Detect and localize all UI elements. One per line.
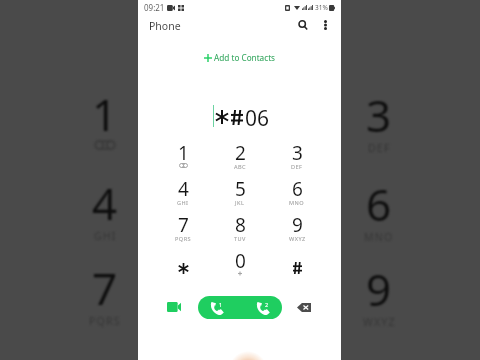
staticText: 9: [366, 259, 392, 319]
button[interactable]: 3: [271, 140, 323, 176]
staticText: 6: [292, 176, 303, 202]
staticText: ABC: [234, 163, 247, 171]
button[interactable]: 6: [271, 176, 323, 212]
staticText: DEF: [291, 163, 303, 171]
button[interactable]: 4: [157, 176, 209, 212]
staticText: 1: [219, 301, 223, 308]
staticText: 7: [92, 258, 118, 318]
button[interactable]: 2: [214, 140, 266, 176]
staticText: Phone: [149, 19, 181, 33]
button[interactable]: Search: [293, 15, 313, 35]
staticText: 1: [178, 140, 189, 166]
button[interactable]: [271, 248, 323, 284]
staticText: 31%: [315, 3, 328, 12]
staticText: JKL: [235, 199, 245, 207]
button[interactable]: [157, 248, 209, 284]
staticText: GHI: [177, 199, 189, 207]
button[interactable]: Backspace: [292, 296, 316, 318]
staticText: 3: [366, 85, 392, 145]
staticText: Add to Contacts: [214, 52, 276, 63]
button[interactable]: 5: [214, 176, 266, 212]
staticText: WXYZ: [289, 235, 306, 243]
button[interactable]: 8: [214, 212, 266, 248]
staticText: 2: [265, 301, 269, 308]
staticText: 4: [178, 176, 189, 202]
button[interactable]: 7: [157, 212, 209, 248]
staticText: 5: [235, 176, 246, 202]
staticText: PQRS: [175, 235, 192, 243]
button[interactable]: Call: [198, 296, 282, 319]
staticText: 9: [292, 212, 303, 238]
staticText: 8: [235, 212, 246, 238]
staticText: 06: [245, 104, 270, 133]
button[interactable]: Add to Contacts: [198, 50, 282, 65]
staticText: 1: [92, 84, 118, 144]
staticText: 09:21: [144, 2, 165, 13]
staticText: 6: [366, 174, 392, 234]
button[interactable]: 9: [271, 212, 323, 248]
staticText: 7: [178, 212, 189, 238]
button[interactable]: 1: [157, 140, 209, 176]
staticText: 0: [235, 248, 246, 274]
staticText: 3: [292, 140, 303, 166]
staticText: TUV: [234, 235, 246, 243]
staticText: 4: [92, 173, 118, 233]
button[interactable]: More options: [315, 15, 335, 35]
staticText: 2: [235, 140, 246, 166]
button[interactable]: Video call: [162, 296, 186, 318]
staticText: MNO: [289, 199, 305, 207]
button[interactable]: 0: [214, 248, 266, 284]
